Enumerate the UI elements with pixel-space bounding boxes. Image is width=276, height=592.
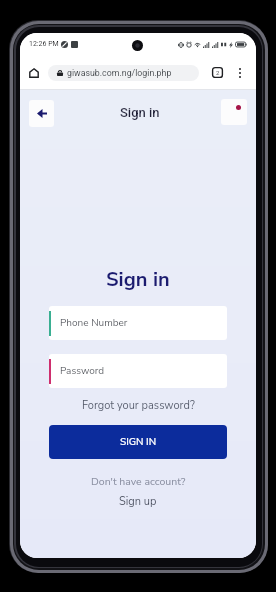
staticText: Password [60, 364, 105, 378]
staticText: 12:26 PM [29, 40, 59, 48]
other: Home [29, 68, 39, 78]
button[interactable]: Tabs [212, 67, 223, 78]
staticText: Forgot your password? [82, 398, 195, 413]
staticText: Sign in [120, 105, 160, 120]
button[interactable]: Password [49, 354, 227, 388]
button[interactable]: Sign up [115, 493, 161, 510]
staticText: 2 [216, 69, 220, 76]
staticText: Sign up [119, 494, 157, 509]
button[interactable]: Back [29, 100, 54, 127]
button[interactable]: Account [221, 99, 247, 125]
button[interactable]: More options [233, 66, 247, 80]
staticText: giwasub.com.ng/login.php [67, 68, 172, 78]
staticText: SIGN IN [120, 435, 157, 449]
button[interactable]: Phone Number [49, 306, 227, 340]
button[interactable]: giwasub.com.ng/login.php [48, 65, 199, 81]
button[interactable]: Forgot your password? [78, 396, 199, 415]
staticText: Sign in [106, 266, 170, 293]
button[interactable]: SIGN IN [49, 425, 227, 459]
staticText: Phone Number [60, 316, 128, 330]
staticText: Don't have account? [91, 474, 186, 488]
